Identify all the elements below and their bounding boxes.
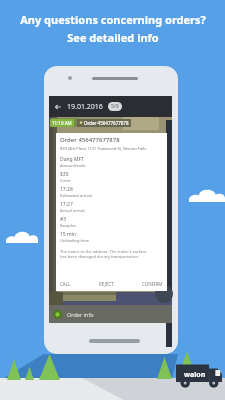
button[interactable]: 5/9 [108, 102, 122, 111]
staticText: Order info [67, 311, 94, 318]
staticText: 17:27 [60, 201, 73, 208]
staticText: Actual arrival [60, 208, 85, 213]
staticText: Samples [60, 223, 76, 228]
staticText: Cover [60, 178, 71, 183]
button[interactable]: CALL [60, 281, 71, 287]
staticText: 839 J4th Place,1131 Townsend St, Benton … [60, 146, 147, 151]
staticText: See detailed info [67, 30, 159, 45]
button[interactable]: Navigate [155, 285, 173, 303]
staticText: 19.01.2016 [67, 102, 103, 112]
staticText: 5/9 [111, 103, 119, 110]
staticText: has been damaged during transportation. [60, 254, 139, 259]
staticText: Estimated arrival [60, 193, 92, 198]
staticText: walon [184, 370, 206, 380]
button[interactable]: Order info [49, 305, 172, 323]
other: Delivery truck [176, 363, 222, 388]
staticText: 17:28 [60, 186, 73, 193]
staticText: Amount/code [60, 163, 86, 168]
staticText: Dang MFT [60, 156, 84, 163]
staticText: 15 min [60, 231, 77, 238]
staticText: Order 456477677878 [60, 136, 120, 144]
staticText: The notice to the address. The trailer's… [60, 249, 147, 254]
staticText: Order 456477677878 [84, 120, 129, 126]
button[interactable]: REJECT [99, 281, 114, 287]
staticText: #3 [60, 216, 67, 223]
button[interactable]: CONFIRM [142, 281, 163, 287]
button[interactable]: Back [54, 103, 62, 111]
staticText: Any questions concerning orders? [20, 12, 206, 27]
staticText: Unloading time [60, 238, 90, 243]
staticText: $30 [60, 171, 69, 178]
staticText: 11:10 AM [52, 120, 72, 126]
